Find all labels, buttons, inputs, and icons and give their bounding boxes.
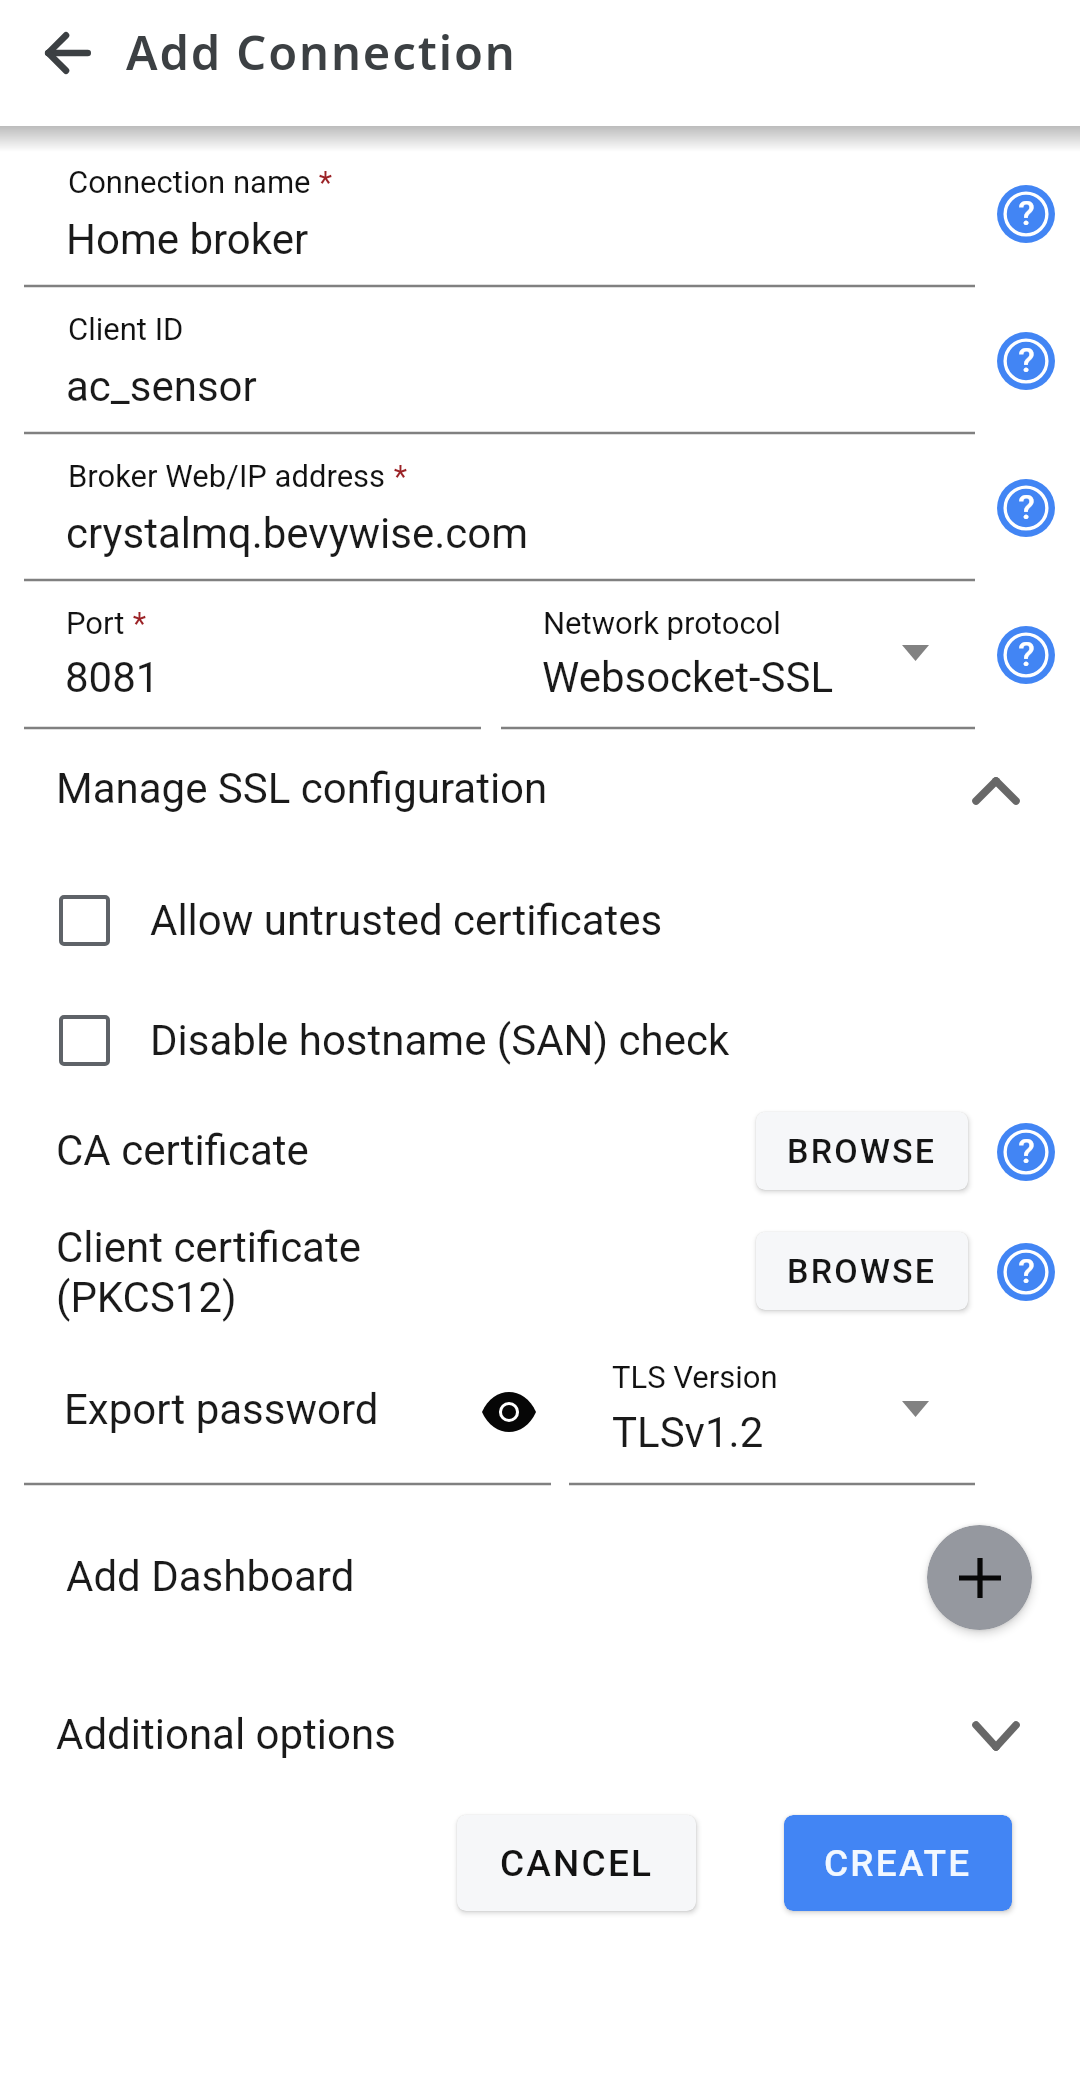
- staticText: ?: [1018, 1131, 1035, 1171]
- button[interactable]: CREATE: [784, 1815, 1012, 1911]
- staticText: ?: [1018, 193, 1035, 233]
- staticText: Broker Web/IP address: [68, 458, 386, 494]
- button[interactable]: Back: [22, 7, 114, 99]
- button[interactable]: Help: [992, 327, 1060, 395]
- staticText: TLSv1.2: [612, 1408, 764, 1457]
- button[interactable]: Help: [992, 1118, 1060, 1186]
- staticText: CA certificate: [56, 1126, 309, 1175]
- staticText: Manage SSL configuration: [56, 764, 548, 813]
- button[interactable]: Help: [992, 1238, 1060, 1306]
- staticText: Disable hostname (SAN) check: [150, 1016, 730, 1065]
- staticText: BROWSE: [787, 1251, 937, 1291]
- staticText: ac_sensor: [66, 362, 257, 411]
- staticText: (PKCS12): [56, 1273, 237, 1322]
- staticText: ?: [1018, 634, 1035, 674]
- staticText: CANCEL: [500, 1842, 654, 1885]
- staticText: ?: [1018, 1251, 1035, 1291]
- staticText: Add Connection: [126, 20, 517, 84]
- staticText: CREATE: [824, 1842, 972, 1885]
- staticText: Add Dashboard: [66, 1552, 355, 1601]
- button[interactable]: Show password: [467, 1378, 551, 1446]
- staticText: ?: [1018, 340, 1035, 380]
- staticText: ?: [1018, 487, 1035, 527]
- button[interactable]: [24, 1700, 1032, 1788]
- button[interactable]: BROWSE: [756, 1232, 968, 1310]
- staticText: Home broker: [66, 215, 309, 264]
- staticText: Client certificate: [56, 1223, 361, 1272]
- button[interactable]: Allow untrusted certificates: [40, 876, 920, 964]
- button[interactable]: Add dashboard: [927, 1525, 1032, 1630]
- button[interactable]: Help: [992, 621, 1060, 689]
- staticText: 8081: [65, 653, 160, 702]
- staticText: Websocket-SSL: [542, 653, 834, 702]
- button[interactable]: Disable hostname (SAN) check: [40, 996, 920, 1084]
- staticText: TLS Version: [612, 1359, 778, 1395]
- staticText: *: [386, 458, 408, 494]
- button[interactable]: CANCEL: [457, 1815, 696, 1911]
- staticText: Connection name: [68, 164, 311, 200]
- staticText: Allow untrusted certificates: [150, 896, 663, 945]
- staticText: Client ID: [68, 311, 184, 347]
- staticText: Port: [66, 605, 125, 641]
- staticText: Additional options: [56, 1710, 396, 1759]
- staticText: BROWSE: [787, 1131, 937, 1171]
- staticText: *: [311, 164, 333, 200]
- button[interactable]: [24, 752, 1032, 840]
- staticText: Export password: [64, 1385, 379, 1434]
- staticText: crystalmq.bevywise.com: [66, 509, 529, 558]
- staticText: Network protocol: [543, 605, 781, 641]
- button[interactable]: BROWSE: [756, 1112, 968, 1190]
- staticText: *: [125, 605, 147, 641]
- button[interactable]: Help: [992, 180, 1060, 248]
- button[interactable]: Help: [992, 474, 1060, 542]
